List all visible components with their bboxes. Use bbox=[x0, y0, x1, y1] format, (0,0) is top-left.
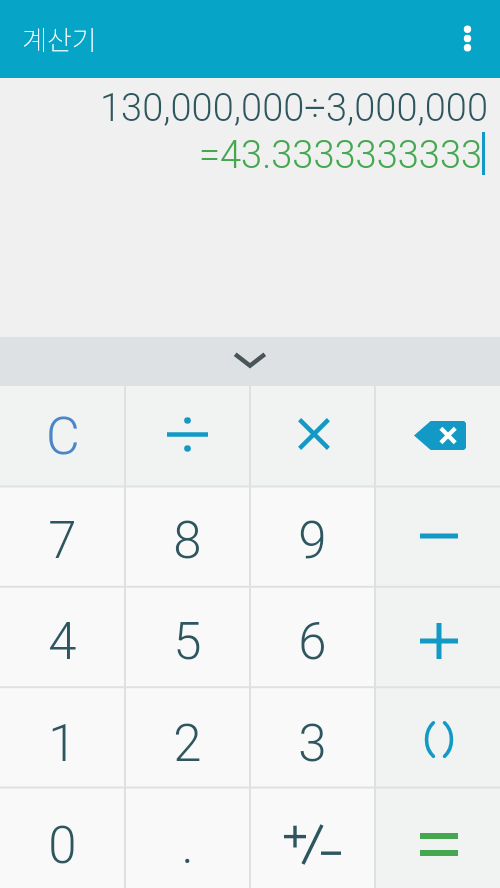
button[interactable]: 7 bbox=[0, 487, 125, 588]
button[interactable]: More options bbox=[432, 0, 500, 78]
staticText: C bbox=[46, 406, 80, 467]
button[interactable]: Plus bbox=[375, 588, 500, 688]
button[interactable]: 3 bbox=[250, 688, 375, 788]
button[interactable]: Collapse keypad bbox=[0, 337, 500, 386]
button[interactable]: 1 bbox=[0, 688, 125, 788]
staticText: 계산기 bbox=[22, 19, 97, 58]
button[interactable]: Divide bbox=[125, 386, 250, 487]
button[interactable]: Parentheses bbox=[375, 688, 500, 788]
staticText: 2 bbox=[173, 714, 202, 774]
button[interactable]: . bbox=[125, 788, 250, 888]
button[interactable]: Backspace bbox=[375, 386, 500, 487]
staticText: 0 bbox=[48, 816, 77, 876]
button[interactable]: 2 bbox=[125, 688, 250, 788]
button[interactable]: Equals bbox=[375, 788, 500, 888]
button[interactable]: 9 bbox=[250, 487, 375, 588]
staticText: 130,000,000÷3,000,000 bbox=[100, 86, 489, 131]
button[interactable]: C bbox=[0, 386, 125, 487]
button[interactable]: 5 bbox=[125, 588, 250, 688]
staticText: 5 bbox=[173, 612, 202, 672]
staticText: 3 bbox=[298, 714, 327, 774]
staticText: 9 bbox=[298, 511, 327, 571]
staticText: . bbox=[181, 816, 194, 876]
button[interactable]: 6 bbox=[250, 588, 375, 688]
button[interactable]: Multiply bbox=[250, 386, 375, 487]
button[interactable]: 4 bbox=[0, 588, 125, 688]
staticText: 8 bbox=[173, 511, 202, 571]
button[interactable]: 8 bbox=[125, 487, 250, 588]
staticText: 6 bbox=[298, 612, 327, 672]
staticText: 7 bbox=[48, 511, 77, 571]
staticText: 1 bbox=[48, 714, 77, 774]
button[interactable]: 0 bbox=[0, 788, 125, 888]
button[interactable]: Minus bbox=[375, 487, 500, 588]
staticText: 4 bbox=[48, 612, 77, 672]
staticText: =43.3333333333 bbox=[199, 133, 483, 178]
button[interactable]: Plus minus sign bbox=[250, 788, 375, 888]
